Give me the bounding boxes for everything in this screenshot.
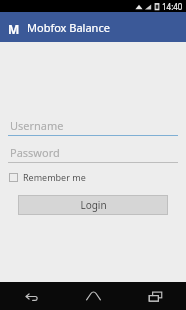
staticText: Username (10, 118, 64, 133)
button[interactable]: Login (18, 195, 168, 215)
button[interactable]: Remember me (9, 169, 86, 185)
button[interactable]: Home (62, 282, 124, 310)
button[interactable]: Password (8, 145, 178, 163)
staticText: Password (10, 145, 60, 160)
staticText: M (8, 21, 20, 34)
staticText: Remember me (23, 171, 86, 183)
staticText: Login (80, 198, 107, 212)
button[interactable]: Back (0, 282, 62, 310)
staticText: 14:40 (162, 1, 183, 12)
staticText: Mobfox Balance (27, 20, 110, 35)
button[interactable]: Username (8, 118, 178, 136)
button[interactable]: Recent apps (124, 282, 186, 310)
